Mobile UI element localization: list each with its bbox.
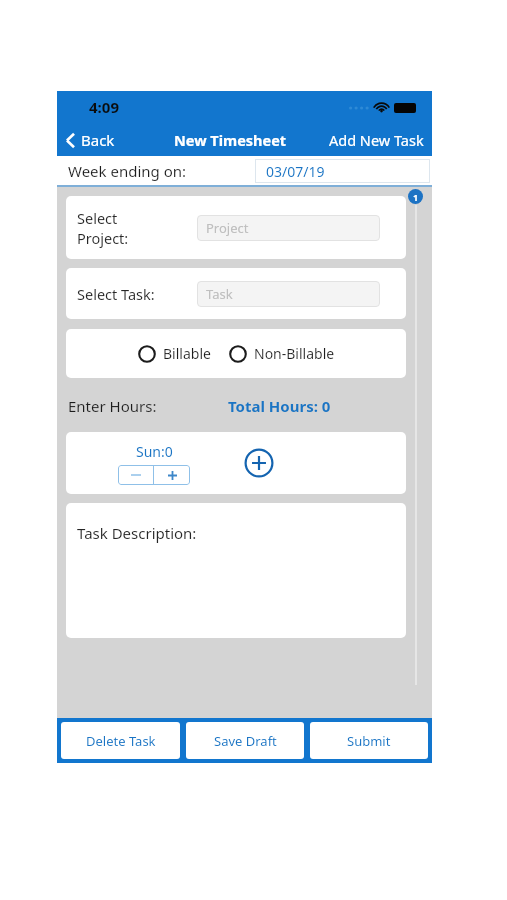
button[interactable]: Delete Task xyxy=(61,722,180,759)
staticText: Project: xyxy=(77,228,129,248)
staticText: 1 xyxy=(413,191,419,203)
button[interactable]: Task xyxy=(197,281,380,307)
staticText: Task xyxy=(206,285,233,303)
button[interactable]: Add New Task xyxy=(329,130,432,150)
button[interactable]: Project xyxy=(197,215,380,241)
staticText: Delete Task xyxy=(86,732,156,750)
staticText: Non-Billable xyxy=(254,344,335,363)
staticText: Back xyxy=(81,130,115,150)
button[interactable]: Submit xyxy=(310,722,428,759)
staticText: Project xyxy=(206,219,249,237)
button[interactable]: Add day xyxy=(241,445,277,481)
button[interactable]: Billable xyxy=(136,340,213,367)
staticText: Select Task: xyxy=(77,284,155,304)
staticText: Total Hours: 0 xyxy=(228,396,331,416)
staticText: Sun:0 xyxy=(136,442,173,461)
button[interactable]: Back xyxy=(57,126,123,154)
staticText: Save Draft xyxy=(214,732,277,750)
button[interactable]: Save Draft xyxy=(186,722,304,759)
button[interactable]: Non-Billable xyxy=(227,340,337,367)
button[interactable]: Increase hours xyxy=(154,465,190,485)
button[interactable]: New Timesheet xyxy=(174,130,287,150)
staticText: 4:09 xyxy=(89,97,119,117)
staticText: 03/07/19 xyxy=(266,162,325,181)
staticText: Enter Hours: xyxy=(68,396,157,416)
button[interactable]: Decrease hours xyxy=(118,465,153,485)
staticText: Submit xyxy=(347,732,391,750)
staticText: Task Description: xyxy=(77,523,197,543)
staticText: Select xyxy=(77,208,118,228)
button[interactable]: 03/07/19 xyxy=(255,159,430,183)
staticText: Billable xyxy=(163,344,211,363)
button[interactable]: 1 xyxy=(408,189,423,204)
staticText: Week ending on: xyxy=(68,161,187,181)
